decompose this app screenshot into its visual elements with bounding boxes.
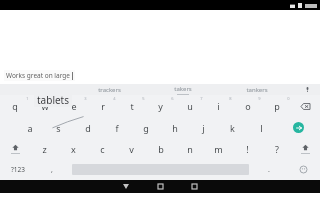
staticText: 2 xyxy=(55,96,58,101)
button[interactable]: g xyxy=(131,117,160,138)
button[interactable]: m xyxy=(204,138,233,159)
staticText: tankers xyxy=(246,86,268,94)
button[interactable]: p xyxy=(262,95,291,117)
button[interactable]: y xyxy=(146,95,175,117)
button[interactable]: u xyxy=(175,95,204,117)
button[interactable]: Back xyxy=(109,180,143,193)
button[interactable]: Home xyxy=(143,180,177,193)
staticText: ! xyxy=(246,143,249,155)
staticText: n xyxy=(187,143,193,155)
staticText: m xyxy=(214,143,223,155)
button[interactable]: c xyxy=(88,138,117,159)
staticText: tablets xyxy=(37,93,69,107)
staticText: ?123 xyxy=(11,165,25,174)
button[interactable]: e xyxy=(59,95,88,117)
button[interactable]: Comma xyxy=(35,159,69,180)
staticText: y xyxy=(158,100,163,112)
staticText: c xyxy=(100,143,105,155)
staticText: g xyxy=(143,122,149,134)
staticText: f xyxy=(115,122,119,134)
button[interactable]: v xyxy=(117,138,146,159)
staticText: 8 xyxy=(229,96,232,101)
staticText: h xyxy=(172,122,178,134)
button[interactable]: f xyxy=(102,117,131,138)
staticText: l xyxy=(260,122,263,134)
staticText: ? xyxy=(275,143,279,155)
staticText: trackers xyxy=(98,86,121,94)
staticText: v xyxy=(129,143,134,155)
button[interactable]: r xyxy=(88,95,117,117)
staticText: . xyxy=(268,165,270,175)
button[interactable]: takers xyxy=(146,84,220,95)
button[interactable]: w xyxy=(30,95,59,117)
button[interactable]: ? xyxy=(262,138,291,159)
staticText: 5 xyxy=(142,96,145,101)
button[interactable]: Voice input xyxy=(294,84,320,95)
staticText: t xyxy=(130,100,134,112)
button[interactable]: t xyxy=(117,95,146,117)
button[interactable]: ! xyxy=(233,138,262,159)
button[interactable]: trackers xyxy=(73,84,146,95)
staticText: e xyxy=(71,100,77,112)
button[interactable]: o xyxy=(233,95,262,117)
button[interactable]: s xyxy=(44,117,73,138)
button[interactable]: tankers xyxy=(220,84,294,95)
button[interactable]: Shift xyxy=(291,138,320,159)
button[interactable]: a xyxy=(15,117,44,138)
button[interactable]: Recent apps xyxy=(177,180,211,193)
staticText: 4 xyxy=(113,96,116,101)
staticText: takers xyxy=(174,85,192,93)
staticText: k xyxy=(230,122,235,134)
button[interactable]: b xyxy=(146,138,175,159)
button[interactable]: x xyxy=(59,138,88,159)
button[interactable]: Backspace xyxy=(291,95,320,117)
staticText: i xyxy=(217,100,220,112)
staticText: d xyxy=(85,122,91,134)
button[interactable]: Shift xyxy=(0,138,30,159)
button[interactable]: j xyxy=(189,117,218,138)
staticText: 3 xyxy=(84,96,87,101)
staticText: Works great on large xyxy=(6,71,70,80)
button[interactable]: d xyxy=(73,117,102,138)
staticText: , xyxy=(51,165,53,175)
staticText: 1 xyxy=(26,96,29,101)
staticText: q xyxy=(12,100,18,112)
button[interactable]: n xyxy=(175,138,204,159)
button[interactable]: q xyxy=(0,95,30,117)
button[interactable]: i xyxy=(204,95,233,117)
staticText: a xyxy=(27,122,33,134)
staticText: s xyxy=(56,122,61,134)
button[interactable]: l xyxy=(247,117,276,138)
staticText: p xyxy=(274,100,280,112)
staticText: 9 xyxy=(258,96,261,101)
staticText: 0 xyxy=(287,96,290,101)
staticText: x xyxy=(71,143,76,155)
staticText: u xyxy=(187,100,193,112)
staticText: 7 xyxy=(200,96,203,101)
button[interactable]: Emoji xyxy=(286,159,320,180)
staticText: 6 xyxy=(171,96,174,101)
button[interactable]: h xyxy=(160,117,189,138)
staticText: r xyxy=(101,100,105,112)
staticText: b xyxy=(158,143,164,155)
staticText: w xyxy=(41,100,49,112)
button[interactable]: Enter xyxy=(276,117,320,138)
button[interactable]: ?123 xyxy=(0,159,35,180)
staticText: o xyxy=(245,100,251,112)
staticText: z xyxy=(42,143,47,155)
staticText: j xyxy=(202,122,205,134)
button[interactable]: z xyxy=(30,138,59,159)
button[interactable]: k xyxy=(218,117,247,138)
